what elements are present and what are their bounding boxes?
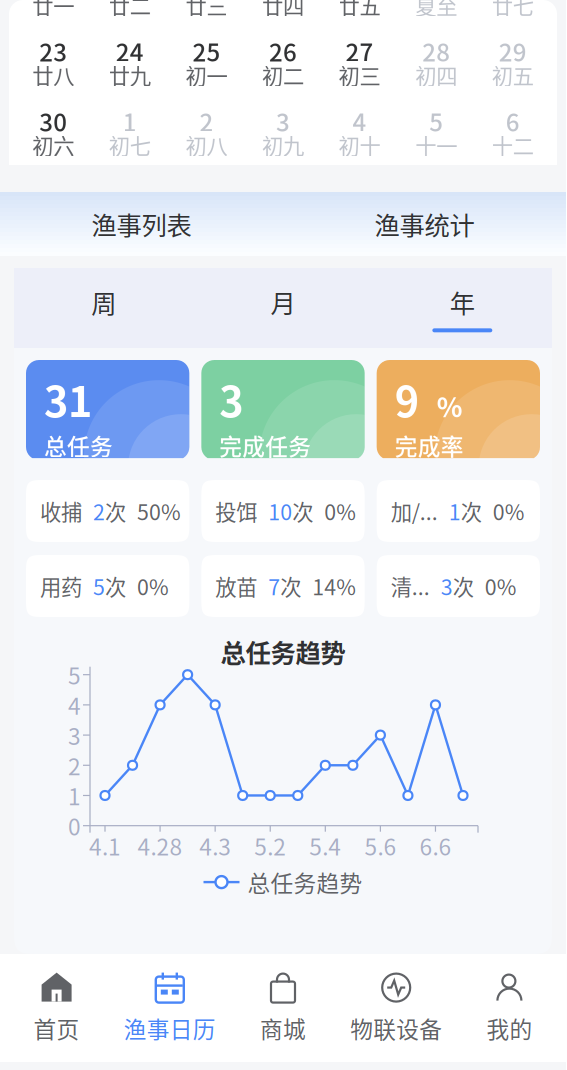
button[interactable]: 31 — [26, 360, 189, 460]
staticText: 次 — [280, 571, 301, 601]
staticText: 清... — [391, 571, 430, 601]
staticText: 初三 — [339, 60, 381, 90]
staticText: 5 — [68, 658, 81, 691]
button[interactable]: 年 — [373, 268, 552, 348]
staticText: 4 — [68, 688, 81, 721]
staticText: 初二 — [262, 60, 304, 90]
staticText: 3 — [68, 719, 81, 751]
staticText: 27 — [346, 34, 374, 68]
staticText: 月 — [270, 284, 295, 320]
button[interactable]: 3 — [201, 360, 365, 460]
staticText: 7 — [268, 571, 280, 601]
staticText: 1 — [449, 496, 461, 526]
button[interactable]: 9 — [377, 360, 540, 460]
staticText: 0% — [137, 571, 169, 601]
staticText: 14% — [312, 571, 356, 601]
button[interactable]: 渔事日历 — [113, 954, 226, 1062]
staticText: 完成任务 — [219, 429, 311, 462]
staticText: 渔事统计 — [374, 206, 474, 242]
staticText: 年 — [450, 284, 475, 320]
staticText: 总任务趋势 — [220, 633, 345, 670]
staticText: 初一 — [185, 60, 227, 90]
staticText: 廿七 — [492, 0, 534, 20]
button[interactable]: 渔事统计 — [283, 192, 566, 256]
staticText: 5.2 — [254, 829, 286, 862]
staticText: 1 — [68, 779, 81, 812]
staticText: 夏至 — [415, 0, 457, 20]
staticText: 5.6 — [364, 829, 396, 862]
staticText: 4 — [353, 104, 367, 138]
staticText: 5.4 — [309, 829, 341, 862]
button[interactable]: 月 — [193, 268, 373, 348]
button[interactable]: 商城 — [226, 954, 340, 1062]
staticText: 初八 — [185, 130, 227, 160]
staticText: 0% — [324, 496, 356, 526]
staticText: 廿九 — [109, 60, 151, 90]
staticText: 4.28 — [138, 829, 183, 862]
staticText: 投饵 — [215, 496, 257, 526]
button[interactable]: 用药 — [26, 555, 189, 617]
staticText: 初六 — [32, 130, 74, 160]
staticText: 十二 — [492, 130, 534, 160]
staticText: 6.6 — [419, 829, 451, 862]
staticText: 我的 — [486, 1012, 532, 1044]
staticText: 2 — [199, 104, 213, 138]
staticText: 9 — [395, 369, 419, 429]
staticText: 总任务趋势 — [247, 866, 362, 898]
button[interactable]: 清... — [377, 555, 540, 617]
staticText: 十一 — [415, 130, 457, 160]
staticText: 次 — [292, 496, 313, 526]
staticText: 廿二 — [109, 0, 151, 20]
staticText: 0% — [485, 571, 517, 601]
button[interactable]: 渔事列表 — [0, 192, 283, 256]
staticText: 3 — [219, 369, 243, 429]
staticText: 物联设备 — [350, 1012, 442, 1044]
staticText: 廿五 — [339, 0, 381, 20]
staticText: 24 — [116, 34, 144, 68]
staticText: 廿四 — [262, 0, 304, 20]
staticText: 5 — [93, 571, 105, 601]
staticText: 次 — [461, 496, 482, 526]
staticText: 周 — [91, 284, 116, 320]
staticText: 2 — [93, 496, 105, 526]
button[interactable]: 放苗 — [201, 555, 365, 617]
button[interactable]: 加/... — [377, 480, 540, 542]
staticText: 初九 — [262, 130, 304, 160]
staticText: 商城 — [260, 1012, 306, 1044]
button[interactable]: 首页 — [0, 954, 113, 1062]
staticText: 用药 — [40, 571, 82, 601]
staticText: 31 — [44, 369, 92, 429]
staticText: 28 — [422, 34, 450, 68]
staticText: 完成率 — [395, 429, 464, 462]
button[interactable]: 周 — [14, 268, 193, 348]
staticText: 次 — [105, 571, 126, 601]
staticText: 3 — [441, 571, 453, 601]
staticText: 23 — [39, 34, 67, 68]
staticText: 廿八 — [32, 60, 74, 90]
staticText: 50% — [137, 496, 181, 526]
button[interactable]: 收捕 — [26, 480, 189, 542]
staticText: 29 — [499, 34, 527, 68]
staticText: 0% — [493, 496, 525, 526]
staticText: 0 — [68, 809, 81, 842]
staticText: 2 — [68, 749, 81, 782]
staticText: 廿一 — [32, 0, 74, 20]
staticText: 渔事日历 — [124, 1012, 216, 1044]
staticText: 4.3 — [199, 829, 231, 862]
button[interactable]: 物联设备 — [340, 954, 453, 1062]
staticText: 廿三 — [185, 0, 227, 20]
staticText: 26 — [269, 34, 297, 68]
staticText: 次 — [105, 496, 126, 526]
button[interactable]: 投饵 — [201, 480, 365, 542]
staticText: 收捕 — [40, 496, 82, 526]
staticText: 25 — [192, 34, 220, 68]
staticText: 初十 — [339, 130, 381, 160]
staticText: 初五 — [492, 60, 534, 90]
staticText: 5 — [429, 104, 443, 138]
staticText: 1 — [123, 104, 137, 138]
staticText: % — [419, 386, 463, 425]
staticText: 10 — [268, 496, 292, 526]
staticText: 渔事列表 — [91, 206, 191, 242]
button[interactable]: 我的 — [453, 954, 566, 1062]
staticText: 首页 — [34, 1012, 80, 1044]
